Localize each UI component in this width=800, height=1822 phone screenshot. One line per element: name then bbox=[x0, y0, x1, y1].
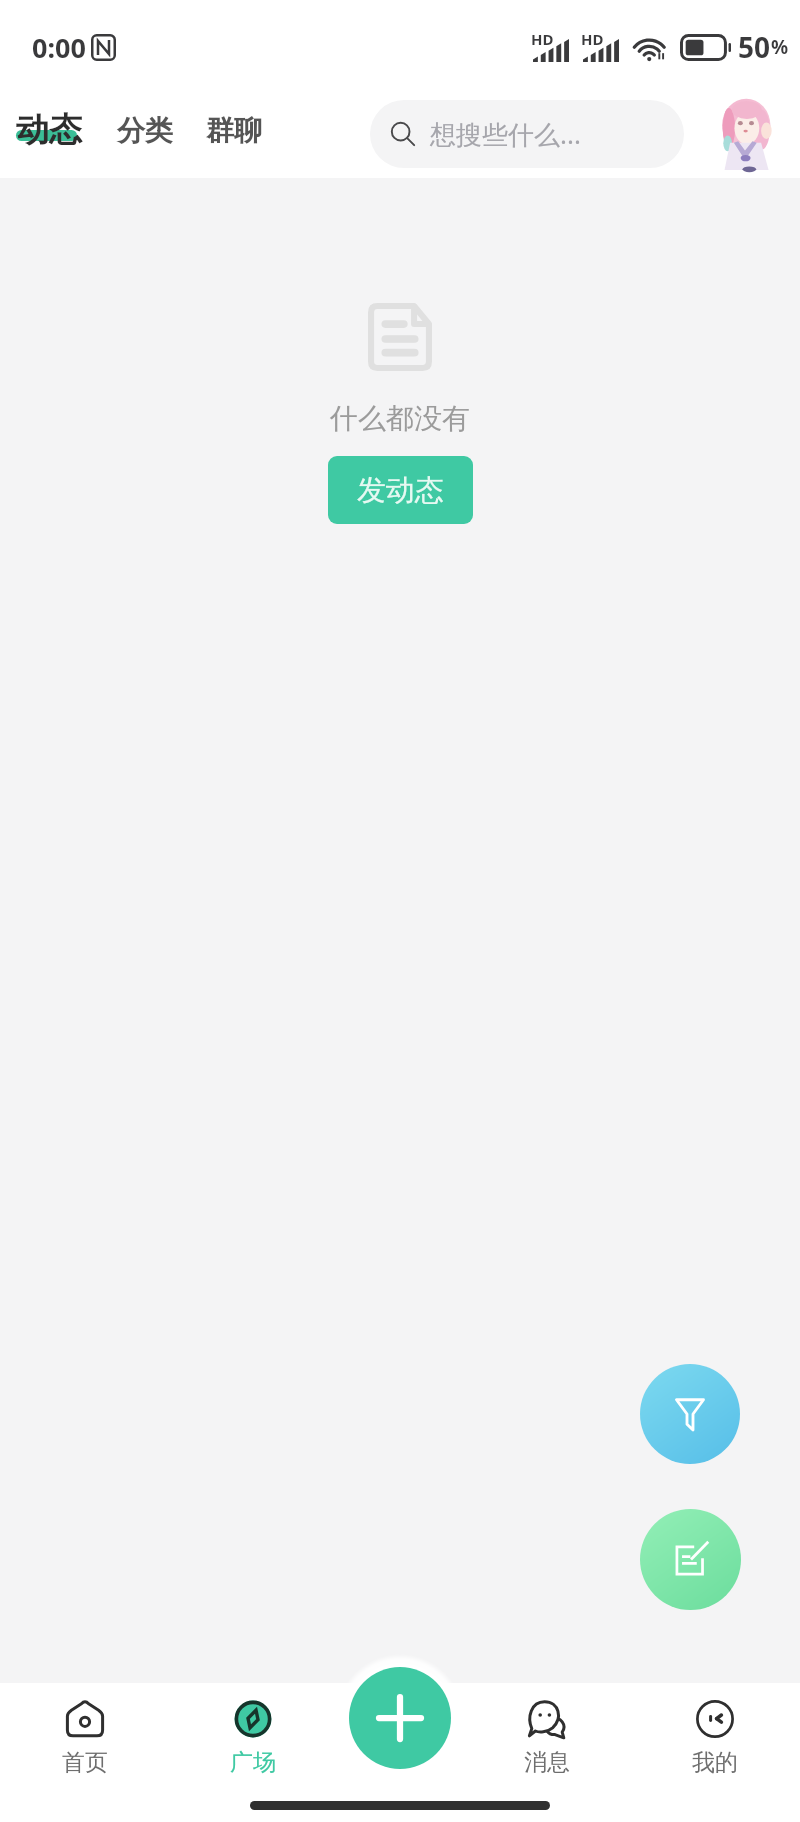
staticText: 0:00 bbox=[32, 29, 86, 66]
staticText: 广场 bbox=[230, 1748, 276, 1777]
staticText: % bbox=[771, 34, 789, 60]
button[interactable]: 消息 bbox=[477, 1683, 617, 1788]
button[interactable]: Profile bbox=[714, 98, 776, 170]
button[interactable]: 广场 bbox=[183, 1683, 323, 1788]
button[interactable]: Compose post bbox=[640, 1509, 741, 1610]
staticText: 首页 bbox=[62, 1748, 108, 1777]
button[interactable]: 发动态 bbox=[328, 456, 473, 524]
staticText: 发动态 bbox=[357, 472, 444, 509]
button[interactable]: 想搜些什么... bbox=[370, 100, 684, 168]
button[interactable]: 我的 bbox=[645, 1683, 785, 1788]
staticText: 分类 bbox=[117, 113, 173, 148]
staticText: 动态 bbox=[16, 109, 82, 151]
staticText: 什么都没有 bbox=[330, 401, 470, 436]
button[interactable]: 分类 bbox=[117, 113, 173, 148]
staticText: HD bbox=[581, 29, 604, 49]
staticText: 50 bbox=[738, 28, 771, 66]
staticText: 消息 bbox=[524, 1748, 570, 1777]
staticText: HD bbox=[531, 29, 554, 49]
staticText: 想搜些什么... bbox=[430, 116, 581, 152]
staticText: 我的 bbox=[692, 1748, 738, 1777]
button[interactable]: Filter bbox=[640, 1364, 740, 1464]
button[interactable]: 动态 bbox=[16, 109, 82, 151]
button[interactable]: 群聊 bbox=[206, 113, 262, 148]
button[interactable]: Add bbox=[349, 1667, 451, 1769]
staticText: 群聊 bbox=[206, 113, 262, 148]
button[interactable]: 首页 bbox=[15, 1683, 155, 1788]
